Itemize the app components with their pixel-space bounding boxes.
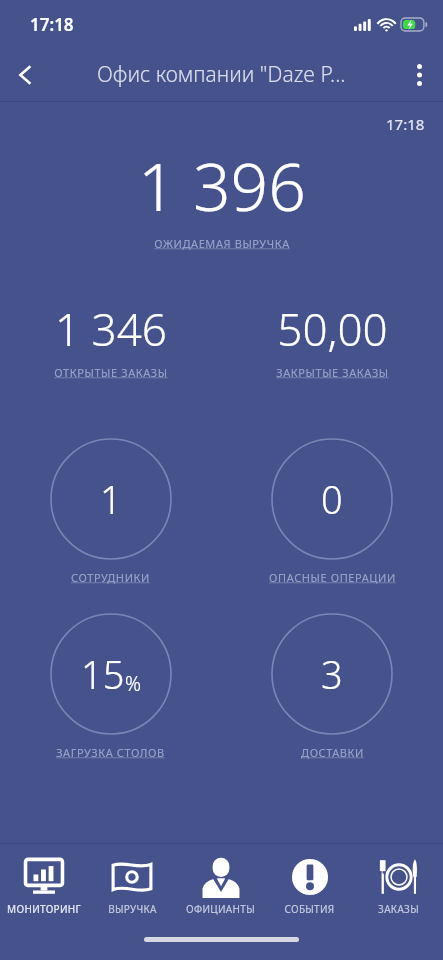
staticText: ОТКРЫТЫЕ ЗАКАЗЫ bbox=[54, 365, 168, 380]
staticText: ОПАСНЫЕ ОПЕРАЦИИ bbox=[269, 570, 396, 585]
staticText: 1 346 bbox=[55, 299, 167, 359]
staticText: 3 bbox=[321, 648, 343, 700]
staticText: Офис компании "Daze P... bbox=[97, 60, 346, 89]
staticText: ЗАКРЫТЫЕ ЗАКАЗЫ bbox=[276, 365, 389, 380]
staticText: 50,00 bbox=[277, 299, 388, 359]
button[interactable]: МОНИТОРИНГ bbox=[0, 844, 88, 926]
button[interactable]: ВЫРУЧКА bbox=[88, 844, 176, 926]
staticText: 0 bbox=[321, 473, 343, 525]
staticText: 17:18 bbox=[386, 114, 425, 134]
staticText: ВЫРУЧКА bbox=[108, 902, 157, 916]
staticText: МОНИТОРИНГ bbox=[7, 902, 81, 916]
staticText: ОФИЦИАНТЫ bbox=[186, 902, 255, 916]
button[interactable]: 1 346 bbox=[0, 299, 221, 380]
button[interactable]: More options bbox=[395, 51, 443, 99]
staticText: 1 bbox=[100, 473, 122, 525]
button[interactable]: СОБЫТИЯ bbox=[265, 844, 354, 926]
staticText: СОБЫТИЯ bbox=[284, 902, 335, 916]
staticText: ДОСТАВКИ bbox=[301, 745, 364, 760]
button[interactable]: 3 bbox=[221, 613, 443, 760]
button[interactable]: 1 396 bbox=[138, 140, 306, 251]
staticText: 17:18 bbox=[30, 13, 74, 36]
staticText: СОТРУДНИКИ bbox=[71, 570, 150, 585]
button[interactable]: Back bbox=[0, 49, 52, 101]
button[interactable]: 15 bbox=[0, 613, 221, 760]
button[interactable]: ЗАКАЗЫ bbox=[354, 844, 443, 926]
staticText: 15 bbox=[81, 648, 125, 700]
staticText: ОЖИДАЕМАЯ ВЫРУЧКА bbox=[154, 236, 290, 251]
staticText: 1 396 bbox=[138, 140, 306, 230]
button[interactable]: 1 bbox=[0, 438, 221, 585]
staticText: ЗАГРУЗКА СТОЛОВ bbox=[56, 745, 165, 760]
staticText: % bbox=[125, 670, 142, 697]
staticText: ЗАКАЗЫ bbox=[378, 902, 419, 916]
button[interactable]: ОФИЦИАНТЫ bbox=[176, 844, 265, 926]
button[interactable]: 0 bbox=[221, 438, 443, 585]
button[interactable]: 50,00 bbox=[221, 299, 443, 380]
